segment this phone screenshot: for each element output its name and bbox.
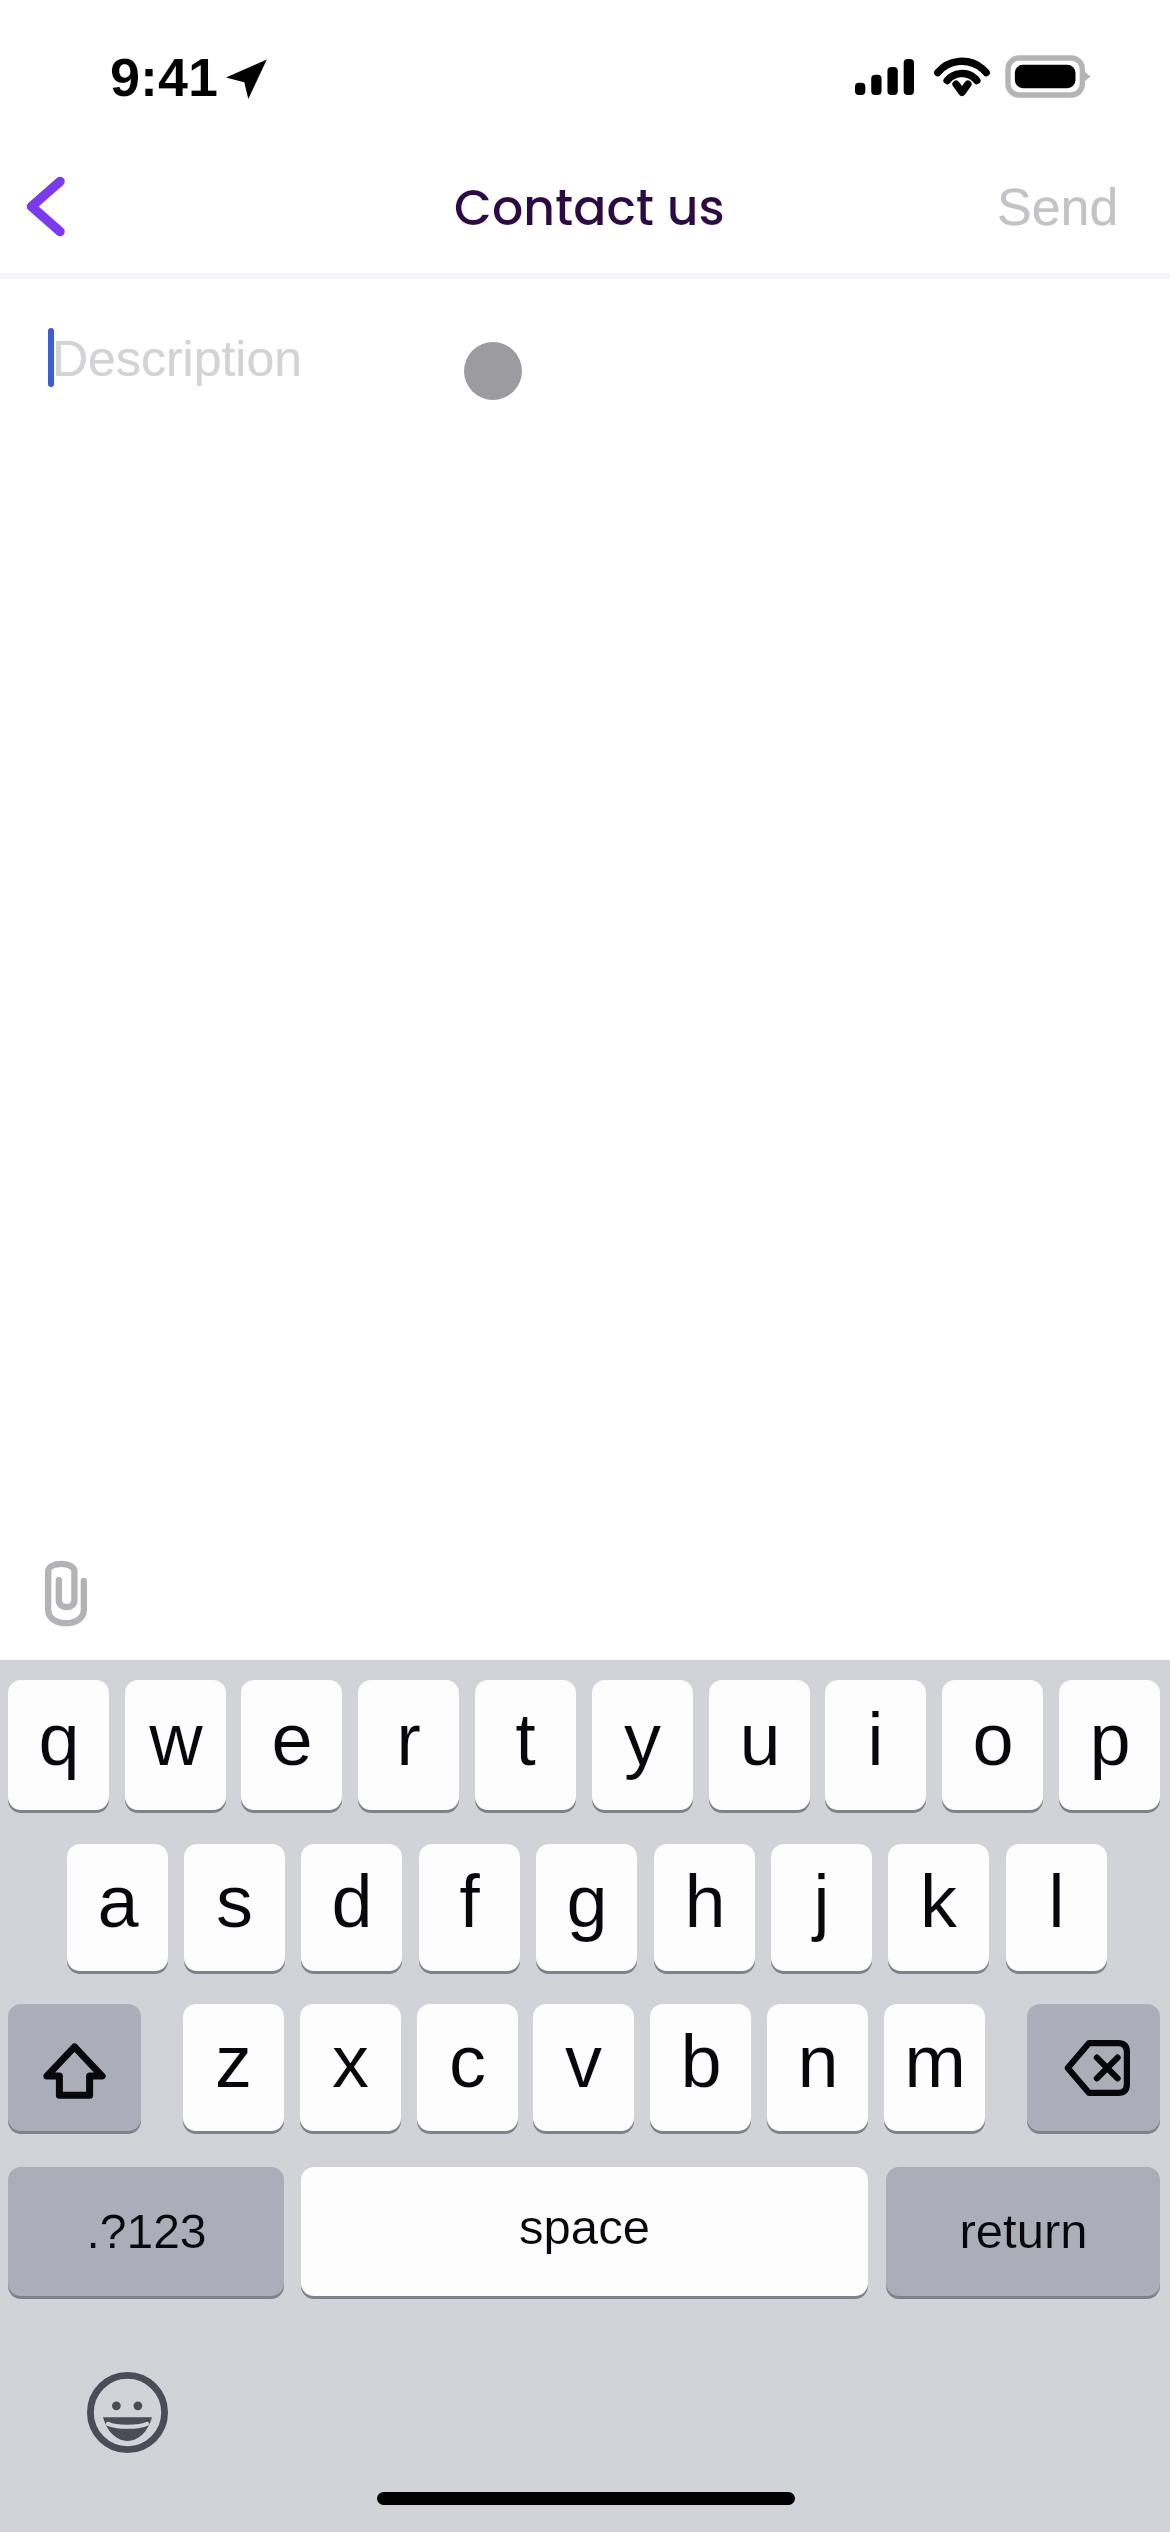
staticText: j: [813, 1860, 830, 1943]
button[interactable]: e: [241, 1680, 342, 1810]
staticText: Send: [997, 178, 1119, 236]
button[interactable]: Backspace: [1027, 2004, 1160, 2131]
button[interactable]: Back: [0, 146, 108, 273]
staticText: u: [739, 1698, 781, 1781]
button[interactable]: s: [184, 1844, 285, 1971]
button[interactable]: .?123: [8, 2167, 284, 2296]
staticText: a: [97, 1860, 139, 1943]
staticText: return: [959, 2204, 1088, 2259]
staticText: s: [216, 1860, 253, 1943]
staticText: 9:41: [110, 47, 219, 107]
button[interactable]: Send: [997, 146, 1170, 273]
button[interactable]: j: [771, 1844, 872, 1971]
button[interactable]: w: [125, 1680, 226, 1810]
button[interactable]: p: [1059, 1680, 1160, 1810]
button[interactable]: g: [536, 1844, 637, 1971]
staticText: h: [684, 1860, 726, 1943]
staticText: t: [515, 1698, 536, 1781]
button[interactable]: Description text field: [0, 279, 1170, 1469]
staticText: b: [680, 2020, 722, 2103]
staticText: k: [920, 1860, 957, 1943]
button[interactable]: Emoji keyboard: [87, 2372, 168, 2453]
staticText: q: [38, 1698, 80, 1781]
staticText: x: [332, 2020, 369, 2103]
staticText: v: [565, 2020, 602, 2103]
button[interactable]: a: [67, 1844, 168, 1971]
button[interactable]: k: [888, 1844, 989, 1971]
staticText: .?123: [86, 2205, 207, 2259]
staticText: n: [797, 2020, 839, 2103]
staticText: w: [149, 1698, 203, 1781]
button[interactable]: r: [358, 1680, 459, 1810]
button[interactable]: space: [301, 2167, 868, 2296]
button[interactable]: i: [825, 1680, 926, 1810]
button[interactable]: t: [475, 1680, 576, 1810]
button[interactable]: y: [592, 1680, 693, 1810]
button[interactable]: Shift: [8, 2004, 141, 2131]
staticText: z: [215, 2020, 252, 2103]
staticText: Description: [52, 331, 303, 387]
button[interactable]: m: [884, 2004, 985, 2131]
staticText: m: [904, 2020, 966, 2103]
button[interactable]: z: [183, 2004, 284, 2131]
staticText: e: [271, 1698, 313, 1781]
button[interactable]: Attach file: [26, 1553, 108, 1635]
button[interactable]: x: [300, 2004, 401, 2131]
button[interactable]: d: [301, 1844, 402, 1971]
button[interactable]: f: [419, 1844, 520, 1971]
staticText: o: [972, 1698, 1014, 1781]
staticText: c: [449, 2020, 486, 2103]
staticText: space: [519, 2200, 650, 2255]
staticText: y: [624, 1698, 661, 1781]
button[interactable]: l: [1006, 1844, 1107, 1971]
button[interactable]: return: [886, 2167, 1160, 2296]
staticText: p: [1089, 1698, 1131, 1781]
button[interactable]: q: [8, 1680, 109, 1810]
button[interactable]: v: [533, 2004, 634, 2131]
button[interactable]: o: [942, 1680, 1043, 1810]
staticText: Contact us: [454, 174, 725, 243]
staticText: l: [1048, 1860, 1065, 1943]
staticText: d: [331, 1860, 373, 1943]
staticText: i: [867, 1698, 884, 1781]
staticText: r: [396, 1698, 421, 1781]
button[interactable]: c: [417, 2004, 518, 2131]
button[interactable]: u: [709, 1680, 810, 1810]
button[interactable]: b: [650, 2004, 751, 2131]
button[interactable]: n: [767, 2004, 868, 2131]
staticText: f: [459, 1860, 480, 1943]
button[interactable]: h: [654, 1844, 755, 1971]
staticText: g: [566, 1860, 608, 1943]
